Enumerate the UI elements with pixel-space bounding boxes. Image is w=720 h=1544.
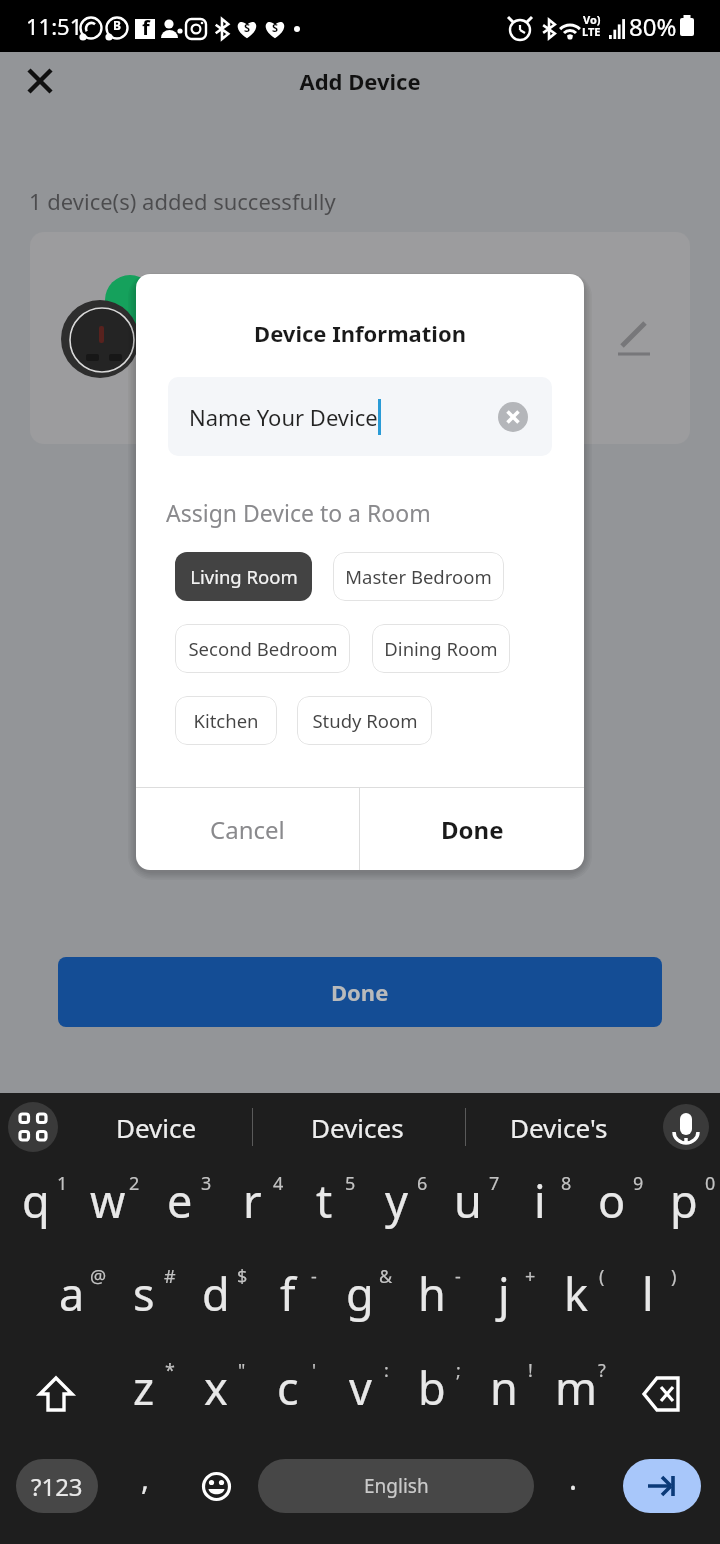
staticText: Done [331,977,389,1007]
staticText: ) [671,1264,677,1289]
staticText: Master Bedroom [345,564,492,589]
button[interactable]: n [468,1348,540,1440]
button[interactable]: m [540,1348,612,1440]
button[interactable]: Second Bedroom [175,624,350,673]
button[interactable]: Done [58,957,662,1027]
button[interactable]: Living Room [175,552,312,601]
button[interactable]: Devices [262,1094,452,1160]
button[interactable]: x [180,1348,252,1440]
button[interactable]: Voice input [663,1104,709,1150]
staticText: Kitchen [193,708,259,733]
button[interactable]: , [115,1448,175,1508]
staticText: ( [599,1264,605,1289]
button[interactable]: a [36,1254,108,1346]
button[interactable]: Master Bedroom [333,552,504,601]
staticText: S [244,20,251,35]
staticText: f [142,14,150,41]
staticText: r [243,1170,262,1231]
staticText: u [454,1170,482,1231]
button[interactable]: d [180,1254,252,1346]
button[interactable]: Clear text [493,397,533,437]
staticText: LTE [582,24,601,39]
staticText: a [59,1263,85,1324]
staticText: c [277,1357,299,1418]
staticText: Devices [311,1110,404,1145]
button[interactable]: Cancel [136,788,359,870]
staticText: Name Your Device [189,402,378,432]
staticText: & [379,1264,393,1289]
button[interactable]: Device [61,1094,251,1160]
staticText: 11:51 [26,11,83,41]
staticText: Cancel [210,813,285,846]
button[interactable]: b [396,1348,468,1440]
button[interactable]: s [108,1254,180,1346]
button[interactable]: Dining Room [372,624,510,673]
staticText: , [141,1458,150,1499]
button[interactable]: f [252,1254,324,1346]
button[interactable]: Edit device name [614,318,654,358]
button[interactable]: English [258,1459,534,1513]
button[interactable]: p [648,1161,720,1253]
button[interactable]: Name Your Device [168,377,552,456]
button[interactable]: Shift [26,1364,86,1424]
staticText: ; [456,1358,461,1383]
button[interactable]: Emoji [194,1464,239,1509]
staticText: s [133,1263,155,1324]
button[interactable]: w [72,1161,144,1253]
button[interactable]: u [432,1161,504,1253]
staticText: Living Room [190,564,298,589]
button[interactable]: t [288,1161,360,1253]
staticText: n [490,1357,518,1418]
button[interactable]: c [252,1348,324,1440]
staticText: English [364,1473,429,1499]
button[interactable]: Backspace [632,1364,692,1424]
staticText: S [272,20,279,35]
button[interactable]: q [0,1161,72,1253]
staticText: 7 [489,1171,500,1196]
staticText: - [311,1264,317,1289]
button[interactable]: o [576,1161,648,1253]
staticText: Dining Room [384,636,498,661]
button[interactable]: Done [360,788,584,870]
button[interactable]: Device's [464,1094,654,1160]
staticText: + [525,1264,536,1289]
button[interactable]: Enter [623,1459,701,1513]
staticText: Device Information [136,318,584,348]
button[interactable]: Toolbar [8,1102,58,1152]
staticText: l [642,1263,654,1324]
staticText: 1 device(s) added successfully [29,186,336,216]
staticText: 80% [629,10,677,43]
staticText: ! [528,1358,533,1383]
button[interactable]: v [324,1348,396,1440]
staticText: m [555,1357,598,1418]
staticText: 0 [705,1171,716,1196]
staticText: 1 [57,1171,68,1196]
staticText: d [202,1263,230,1324]
button[interactable]: l [612,1254,684,1346]
staticText: B [113,17,121,33]
button[interactable]: Close [18,59,62,103]
button[interactable]: r [216,1161,288,1253]
button[interactable]: j [468,1254,540,1346]
button[interactable]: h [396,1254,468,1346]
button[interactable]: ?123 [16,1459,98,1513]
button[interactable]: e [144,1161,216,1253]
button[interactable]: Kitchen [175,696,277,745]
button[interactable]: i [504,1161,576,1253]
staticText: Assign Device to a Room [166,497,431,528]
button[interactable]: z [108,1348,180,1440]
staticText: t [316,1170,333,1231]
button[interactable]: y [360,1161,432,1253]
button[interactable]: g [324,1254,396,1346]
staticText: o [598,1170,626,1231]
staticText: i [534,1170,546,1231]
button[interactable]: Study Room [297,696,432,745]
staticText: p [670,1170,698,1231]
staticText: 4 [273,1171,284,1196]
button[interactable]: . [543,1448,603,1508]
button[interactable]: k [540,1254,612,1346]
staticText: 8 [561,1171,572,1196]
staticText: j [498,1263,510,1324]
staticText: b [418,1357,446,1418]
staticText: ?123 [31,1470,83,1503]
